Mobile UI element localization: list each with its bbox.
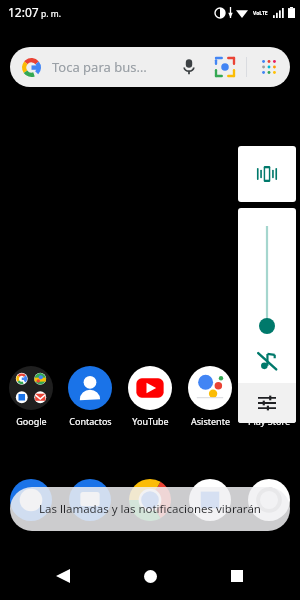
button[interactable]: Control de volumen [252, 226, 282, 338]
button[interactable]: Toca para bus… [10, 47, 290, 87]
staticText: Play Store [248, 415, 290, 427]
button[interactable]: Aplicaciones de Google [254, 52, 284, 82]
staticText: Asistente [191, 415, 230, 427]
staticText: 12:07 [8, 4, 39, 20]
button[interactable]: Google [2, 366, 60, 427]
button[interactable]: Asistente [181, 366, 239, 427]
button[interactable] [61, 479, 119, 521]
staticText: Las llamadas y las notificaciones vibrar… [39, 501, 261, 517]
button[interactable]: Inicio [126, 552, 174, 600]
button[interactable]: Google Lens [210, 52, 240, 82]
button[interactable]: YouTube [121, 366, 179, 427]
staticText: Toca para bus… [52, 58, 147, 76]
staticText: Google [16, 415, 47, 427]
button[interactable] [2, 479, 60, 521]
staticText: VoLTE [253, 10, 268, 17]
button[interactable] [181, 479, 239, 521]
staticText: Contactos [69, 415, 112, 427]
button[interactable]: Contactos [61, 366, 119, 427]
button[interactable]: Búsqueda por voz [174, 52, 204, 82]
button[interactable]: Silenciar multimedia [238, 338, 296, 383]
staticText: YouTube [132, 415, 169, 427]
button[interactable]: Modo vibración [238, 146, 296, 202]
button[interactable]: Play Store [240, 366, 298, 427]
button[interactable] [121, 479, 179, 521]
button[interactable] [240, 479, 298, 521]
button[interactable]: Atrás [39, 552, 87, 600]
button[interactable]: Aplicaciones recientes [213, 552, 261, 600]
staticText: p. m. [41, 8, 61, 20]
button[interactable]: Configuración de sonido [238, 383, 296, 423]
